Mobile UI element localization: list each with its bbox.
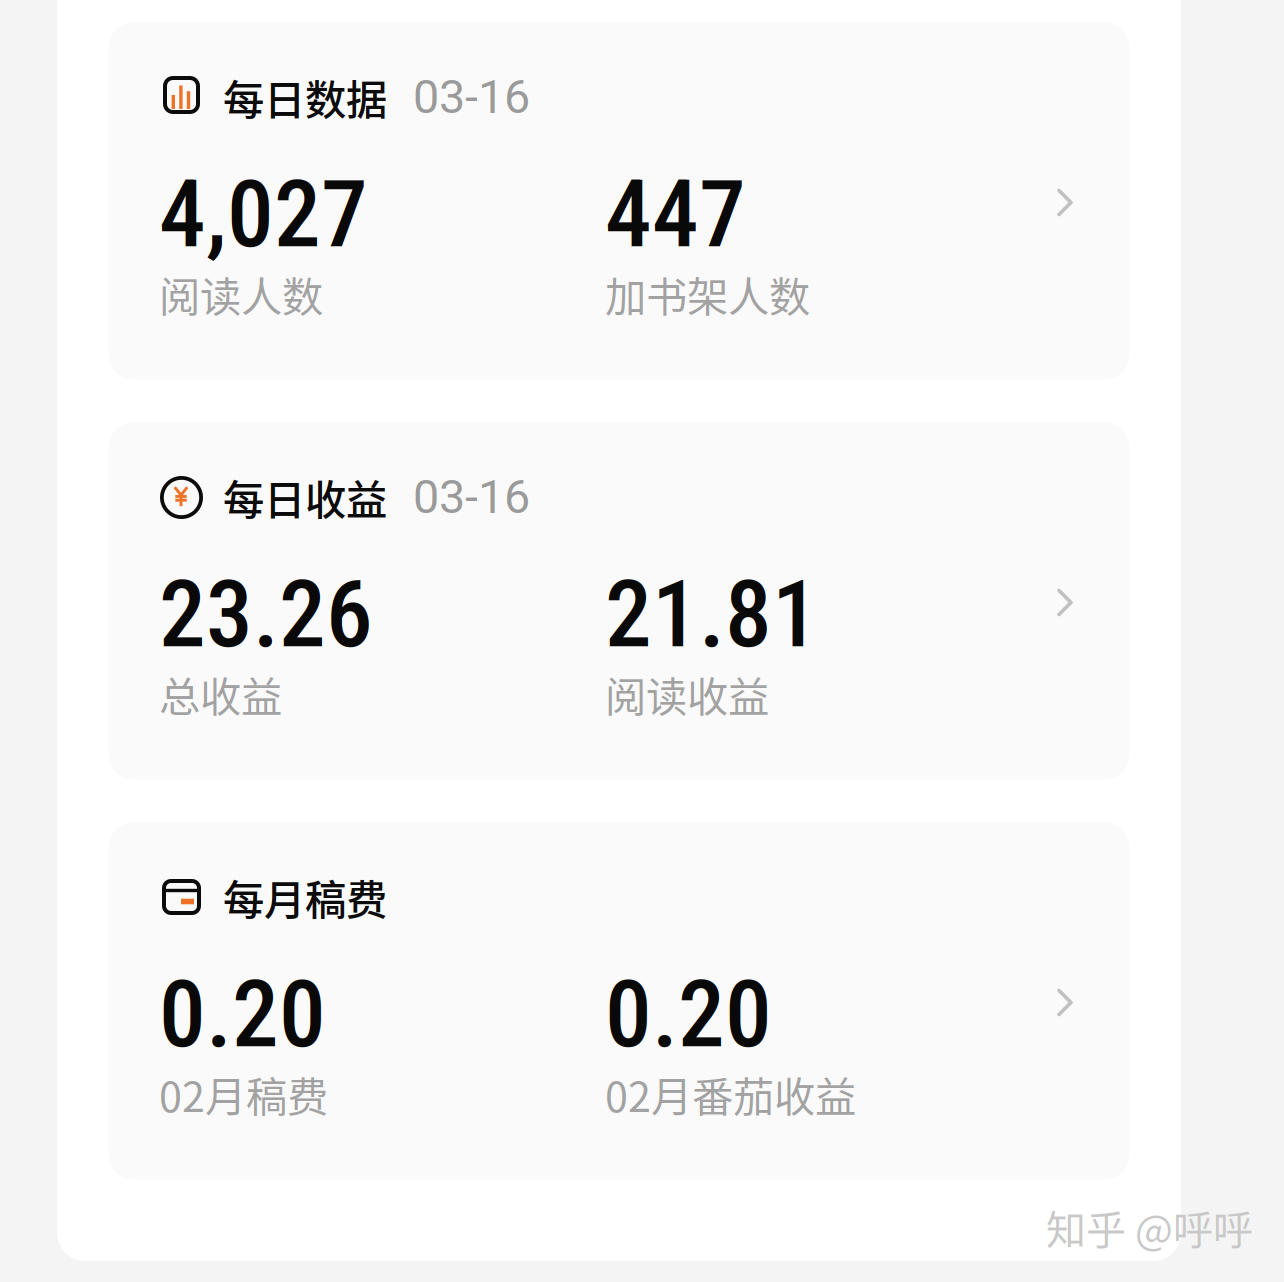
staticText: 21.81 xyxy=(605,560,819,669)
staticText: 447 xyxy=(605,160,746,269)
button[interactable]: 每日数据 xyxy=(108,22,1130,380)
staticText: 4,027 xyxy=(159,160,368,269)
button[interactable]: 每日收益 xyxy=(108,422,1130,780)
staticText: 每月稿费 xyxy=(223,867,387,927)
staticText: 总收益 xyxy=(159,664,282,724)
staticText: 知乎 @呼呼 xyxy=(1046,1198,1253,1256)
staticText: 02月番茄收益 xyxy=(605,1064,856,1124)
staticText: 03-16 xyxy=(413,470,530,524)
staticText: 加书架人数 xyxy=(605,264,810,324)
staticText: 03-16 xyxy=(413,70,530,124)
staticText: 02月稿费 xyxy=(159,1064,328,1124)
staticText: 每日数据 xyxy=(223,67,387,127)
staticText: 0.20 xyxy=(159,960,326,1069)
staticText: 23.26 xyxy=(159,560,373,669)
staticText: 阅读人数 xyxy=(159,264,323,324)
button[interactable]: 每月稿费 xyxy=(108,822,1130,1180)
staticText: 阅读收益 xyxy=(605,664,769,724)
staticText: 每日收益 xyxy=(223,467,387,527)
staticText: 0.20 xyxy=(605,960,772,1069)
